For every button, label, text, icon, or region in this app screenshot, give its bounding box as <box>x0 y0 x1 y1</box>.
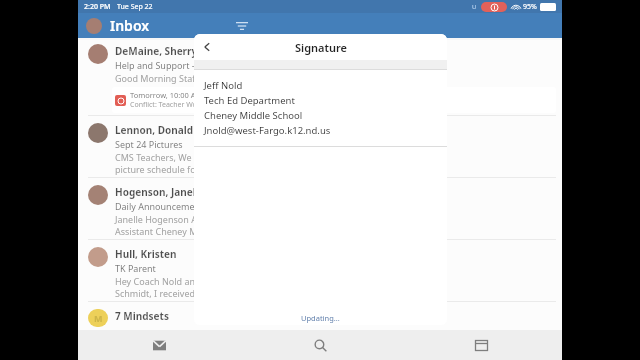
staticText: Signature <box>295 40 347 55</box>
button[interactable]: Search <box>240 330 401 360</box>
button[interactable]: M <box>78 305 562 330</box>
staticText: Janelle Hogenson Admini <box>115 213 222 225</box>
staticText: Tue Sep 22 <box>117 2 153 12</box>
staticText: 2:20 PM <box>84 2 111 12</box>
staticText: Sept 24 Pictures <box>115 138 183 150</box>
staticText: Lennon, Donald <box>115 123 194 137</box>
staticText: Hogenson, Janelle <box>115 185 205 199</box>
staticText: Schmidt, I received a call <box>115 287 219 299</box>
staticText: 7 Mindsets <box>115 309 169 323</box>
staticText: Cheney Middle School <box>204 109 303 122</box>
button[interactable]: Filter <box>230 14 254 38</box>
button[interactable]: Calendar <box>401 330 562 360</box>
button[interactable]: Mail <box>78 330 240 360</box>
staticText: M <box>94 312 103 324</box>
button[interactable]: Hogenson, Janelle <box>78 181 562 243</box>
staticText: Assistant Cheney Middle S <box>115 225 226 237</box>
button[interactable]: Jeff Nold <box>194 70 447 146</box>
staticText: TK Parent <box>115 262 156 274</box>
staticText: Jeff Nold <box>204 79 243 92</box>
button[interactable]: Back <box>194 34 220 60</box>
staticText: Help and Support - Kyle a <box>115 59 222 71</box>
staticText: picture schedule for Thurs <box>115 163 226 175</box>
button[interactable]: DeMaine, Sherry <box>78 40 562 119</box>
staticText: CMS Teachers, We will fol <box>115 151 222 163</box>
button[interactable]: Lennon, Donald <box>78 119 562 181</box>
staticText: Jnold@west-Fargo.k12.nd.us <box>204 124 331 137</box>
staticText: Tech Ed Department <box>204 94 295 107</box>
staticText: Conflict: Teacher Work... <box>130 100 210 110</box>
staticText: Tomorrow, 10:00 A... <box>130 90 202 100</box>
staticText: Inbox <box>110 16 150 35</box>
staticText: 95% <box>523 2 537 12</box>
staticText: Good Morning Staff, As w <box>115 72 223 84</box>
button[interactable]: Hull, Kristen <box>78 243 562 305</box>
staticText: DeMaine, Sherry <box>115 44 198 58</box>
staticText: Updating... <box>301 313 340 323</box>
button[interactable]: Account <box>86 18 102 34</box>
staticText: Hull, Kristen <box>115 247 177 261</box>
staticText: U <box>472 3 477 11</box>
staticText: Daily Announcements 9/2 <box>115 200 224 212</box>
staticText: Hey Coach Nold and Coac <box>115 275 224 287</box>
button[interactable]: Tomorrow, 10:00 A... <box>112 87 556 113</box>
